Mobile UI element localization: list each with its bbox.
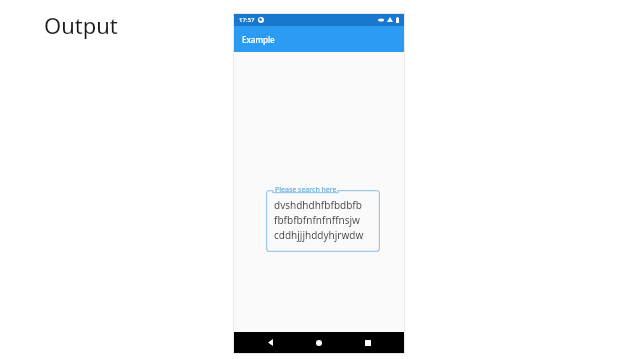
staticText: 17:57 xyxy=(239,16,255,24)
staticText: Example xyxy=(242,34,275,45)
staticText: Please search here xyxy=(275,185,337,195)
staticText: Output xyxy=(44,10,118,40)
staticText: fbfbfbfnfnfnffnsjw xyxy=(274,213,360,227)
staticText: dvshdhdhfbfbdbfb xyxy=(274,198,362,212)
button[interactable]: Recent apps xyxy=(355,332,381,353)
button[interactable]: Back xyxy=(257,332,283,353)
button[interactable]: Home xyxy=(306,332,332,353)
button[interactable] xyxy=(266,190,380,252)
staticText: cddhjjjhddyhjrwdw xyxy=(274,228,364,242)
button[interactable]: Example xyxy=(234,26,404,52)
